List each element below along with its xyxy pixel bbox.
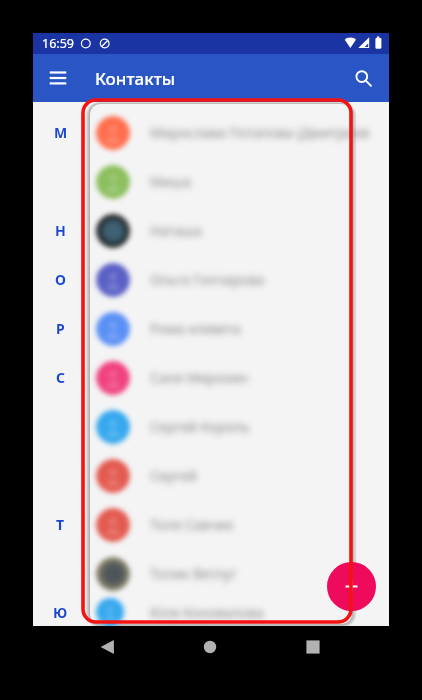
staticText: М	[54, 123, 68, 142]
button[interactable]: Ольга Гончарова	[88, 255, 389, 304]
staticText: Саня Мирохин	[150, 368, 248, 387]
button[interactable]: Юля Коновалова	[88, 598, 389, 626]
staticText: Сергей	[150, 466, 197, 485]
button[interactable]: Сергей	[88, 451, 389, 500]
button[interactable]: Мирослава Потапова (Дмитриев	[88, 108, 389, 157]
button[interactable]: Рома клевета	[88, 304, 389, 353]
button[interactable]: Саня Мирохин	[88, 353, 389, 402]
staticText: Ю	[53, 603, 68, 622]
staticText: Р	[56, 319, 65, 338]
staticText: Толя Савчик	[150, 515, 234, 534]
staticText: Н	[55, 221, 66, 240]
staticText: Сергей Король	[150, 417, 250, 436]
staticText: Юля Коновалова	[150, 603, 264, 622]
button[interactable]: Open navigation menu	[41, 61, 75, 95]
staticText: С	[56, 368, 66, 387]
staticText: Т	[56, 515, 65, 534]
staticText: Толик Ветлуг	[150, 564, 237, 583]
staticText: О	[55, 270, 66, 289]
staticText: 16:59	[42, 35, 74, 52]
button[interactable]: Add contact	[327, 562, 376, 611]
button[interactable]: Миша	[88, 157, 389, 206]
staticText: Контакты	[95, 67, 176, 90]
staticText: Мирослава Потапова (Дмитриев	[150, 123, 370, 142]
button[interactable]: Наташа	[88, 206, 389, 255]
staticText: Рома клевета	[150, 319, 241, 338]
button[interactable]: Толик Ветлуг	[88, 549, 389, 598]
staticText: Миша	[150, 172, 192, 191]
button[interactable]: Search	[346, 61, 380, 95]
button[interactable]: Толя Савчик	[88, 500, 389, 549]
staticText: Ольга Гончарова	[150, 270, 265, 289]
staticText: Наташа	[150, 221, 202, 240]
button[interactable]: Сергей Король	[88, 402, 389, 451]
